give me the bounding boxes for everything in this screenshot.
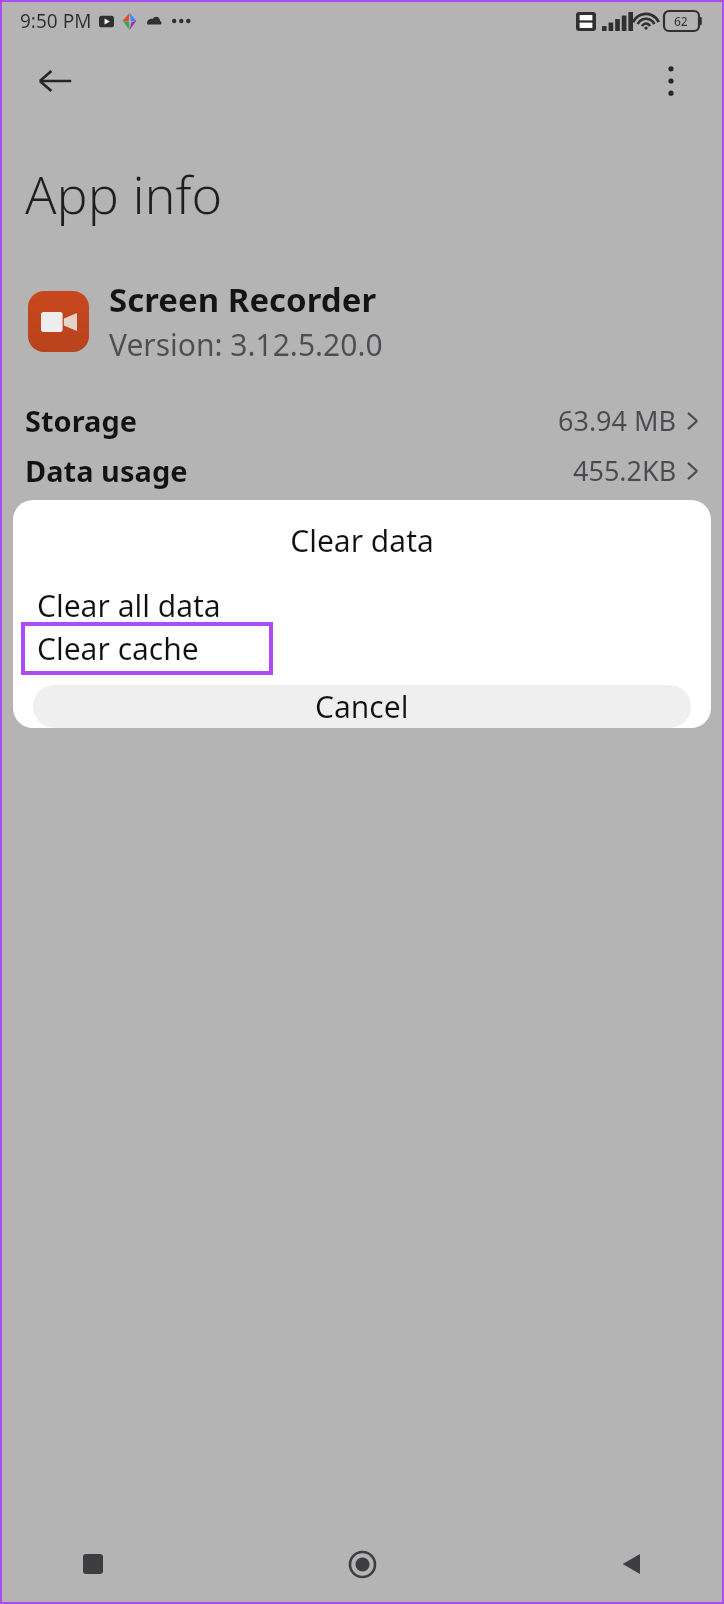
staticText: Version: 3.12.5.20.0 [109,324,383,365]
staticText: Clear data [13,520,711,561]
staticText: Permissions [25,590,139,617]
staticText: Clear all data [37,585,221,618]
button[interactable]: Battery [0,495,724,545]
staticText: 63.94 MB [558,402,677,439]
staticText: Pause app activity if [25,635,276,669]
staticText: Screen Recorder [109,277,377,322]
staticText: Storage [25,401,138,440]
button[interactable]: Back [30,56,80,106]
staticText: Clear cache [37,628,199,669]
staticText: 9:50 PM [20,8,92,34]
button[interactable]: Clear cache [21,622,273,675]
staticText: 455.2KB [573,452,677,489]
staticText: App info [25,158,223,229]
button[interactable]: Back [608,1541,654,1587]
button[interactable]: Data usage [0,445,724,495]
staticText: 62 [674,13,688,29]
button[interactable]: Recent apps [70,1541,116,1587]
button[interactable]: More options [646,56,696,106]
staticText: Cancel [315,686,409,727]
button[interactable]: Home [339,1541,385,1587]
button[interactable]: Clear all data [13,585,711,618]
button[interactable]: Storage [0,395,724,445]
button[interactable]: Cancel [33,685,691,728]
staticText: Data usage [25,451,188,490]
